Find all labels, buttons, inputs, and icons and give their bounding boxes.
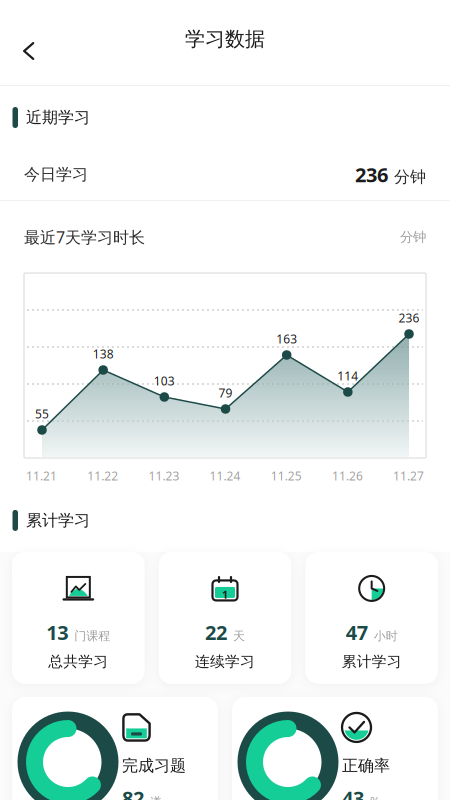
staticText: 236	[398, 310, 419, 326]
button[interactable]: 正确率	[232, 697, 438, 800]
staticText: 43	[342, 785, 364, 800]
staticText: 11.25	[271, 468, 302, 484]
button[interactable]: 返回	[0, 17, 50, 61]
staticText: 分钟	[394, 167, 426, 187]
staticText: 11.27	[393, 468, 424, 484]
staticText: %	[370, 793, 380, 800]
staticText: 114	[337, 368, 358, 384]
staticText: 累计学习	[342, 652, 402, 670]
staticText: 1	[222, 587, 228, 602]
staticText: 分钟	[400, 229, 426, 245]
staticText: 完成习题	[122, 756, 186, 776]
staticText: 学习数据	[185, 27, 265, 51]
staticText: 最近7天学习时长	[24, 226, 145, 248]
staticText: 11.24	[210, 468, 241, 484]
staticText: 总共学习	[48, 652, 108, 670]
staticText: 236	[355, 161, 388, 188]
staticText: 累计学习	[26, 511, 90, 530]
staticText: 22	[205, 619, 227, 645]
staticText: 道	[150, 794, 162, 800]
staticText: 11.23	[148, 468, 179, 484]
staticText: 163	[276, 331, 297, 347]
staticText: 11.22	[87, 468, 118, 484]
staticText: 13	[46, 619, 68, 645]
staticText: 小时	[374, 629, 398, 643]
staticText: 11.21	[26, 468, 57, 484]
staticText: 正确率	[342, 756, 390, 776]
staticText: 连续学习	[195, 652, 255, 670]
staticText: 今日学习	[24, 165, 88, 184]
button[interactable]: 47	[305, 552, 438, 684]
staticText: 103	[154, 373, 175, 389]
staticText: 近期学习	[26, 108, 90, 127]
staticText: 11.26	[332, 468, 363, 484]
staticText: 82	[122, 785, 144, 800]
staticText: 138	[93, 346, 114, 362]
staticText: 门课程	[74, 629, 110, 643]
staticText: 55	[35, 406, 49, 422]
staticText: 79	[218, 385, 232, 401]
button[interactable]: 1	[159, 552, 291, 684]
staticText: 天	[233, 629, 245, 643]
button[interactable]: 完成习题	[12, 697, 218, 800]
button[interactable]: 13	[12, 552, 145, 684]
staticText: 47	[346, 619, 368, 645]
